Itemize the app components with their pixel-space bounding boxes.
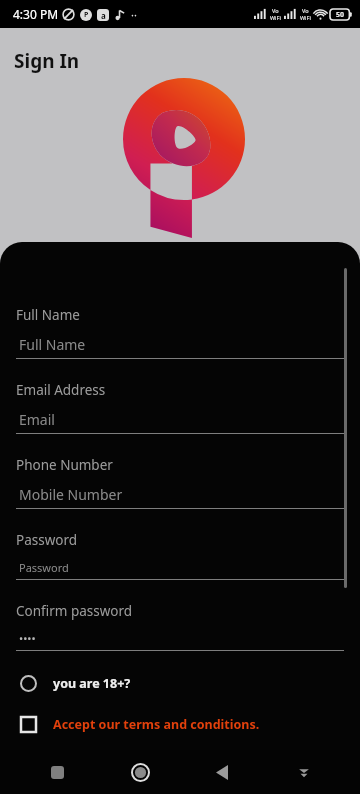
button[interactable]: Accept our terms and conditions. xyxy=(0,712,360,737)
button[interactable]: you are 18+? xyxy=(0,671,360,696)
button[interactable]: Recents xyxy=(35,750,79,794)
staticText: Vo xyxy=(272,7,279,14)
staticText: Accept our terms and conditions. xyxy=(53,716,260,733)
staticText: •••• xyxy=(19,631,36,646)
staticText: Full Name xyxy=(16,306,80,324)
staticText: 50 xyxy=(336,10,345,20)
staticText: Email Address xyxy=(16,381,106,399)
button[interactable]: Full Name xyxy=(0,306,360,359)
staticText: WiFi xyxy=(300,14,311,21)
staticText: Mobile Number xyxy=(19,485,123,504)
staticText: ·· xyxy=(131,7,137,22)
button[interactable]: Back xyxy=(200,750,244,794)
staticText: Password xyxy=(16,531,78,549)
staticText: Sign In xyxy=(14,48,80,74)
staticText: Full Name xyxy=(19,335,86,354)
staticText: WiFi xyxy=(270,14,281,21)
staticText: you are 18+? xyxy=(53,675,131,692)
staticText: P xyxy=(84,10,89,20)
staticText: a xyxy=(101,10,106,21)
button[interactable]: Hide keyboard xyxy=(282,750,326,794)
button[interactable]: Confirm password xyxy=(0,602,360,651)
button[interactable]: Password xyxy=(0,531,360,580)
staticText: Email xyxy=(19,410,55,429)
button[interactable]: Home xyxy=(118,750,162,794)
button[interactable]: Email Address xyxy=(0,381,360,434)
staticText: Phone Number xyxy=(16,456,113,474)
button[interactable]: Phone Number xyxy=(0,456,360,509)
staticText: 4:30 PM xyxy=(13,6,59,22)
staticText: Password xyxy=(19,560,69,575)
staticText: Vo xyxy=(302,7,309,14)
staticText: Confirm password xyxy=(16,602,133,620)
